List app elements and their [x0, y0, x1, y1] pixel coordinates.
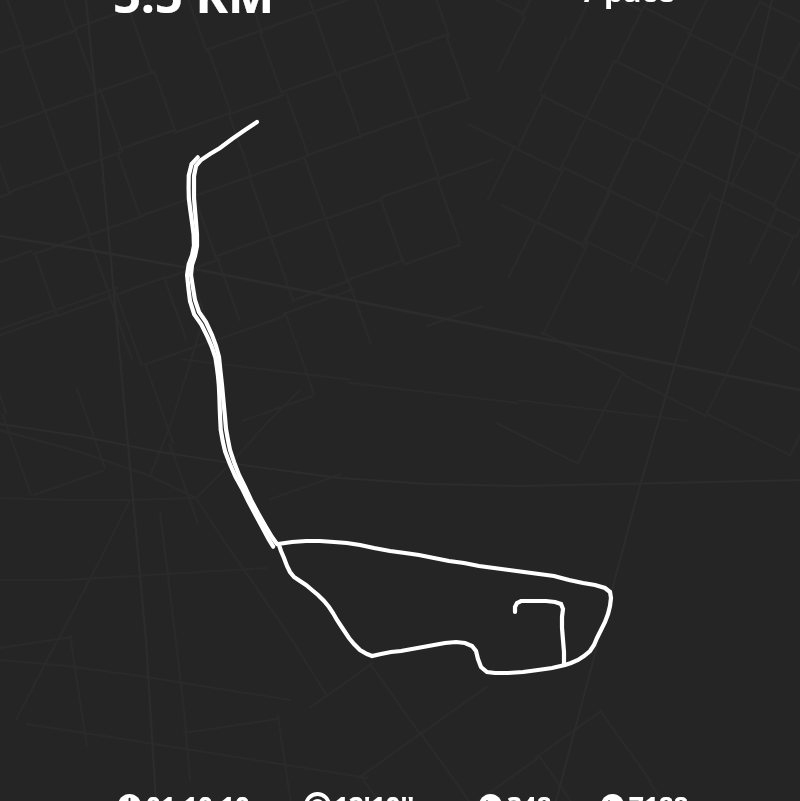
staticText: / pace [584, 0, 675, 11]
staticText: 12'10'' [334, 788, 415, 801]
button[interactable]: 01:10:10 [118, 788, 250, 801]
staticText: 01:10:10 [146, 788, 250, 801]
staticText: 7188 [629, 788, 689, 801]
button[interactable]: 348 [479, 788, 552, 801]
staticText: 5.5 KM [113, 0, 275, 28]
button[interactable]: 7188 [601, 788, 689, 801]
staticText: 348 [507, 788, 552, 801]
button[interactable]: 12'10'' [306, 788, 415, 801]
